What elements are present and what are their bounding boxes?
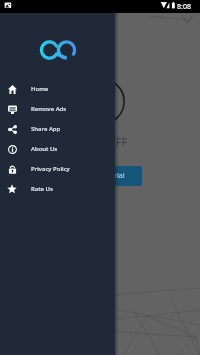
staticText: 8:08 <box>177 2 191 12</box>
staticText: Rate Us <box>31 185 53 193</box>
button[interactable]: Rate Us <box>0 179 115 199</box>
staticText: Remove Ads <box>31 105 67 113</box>
staticText: Share App <box>31 125 61 133</box>
button[interactable]: Home <box>0 79 115 99</box>
staticText: Privacy Policy <box>31 165 70 173</box>
staticText: Home <box>31 85 49 93</box>
button[interactable]: Start Free Trial <box>58 166 142 186</box>
button[interactable]: About Us <box>0 139 115 159</box>
staticText: OFF <box>107 134 128 149</box>
button[interactable]: Share App <box>0 119 115 139</box>
staticText: About Us <box>31 145 58 153</box>
staticText: Start Free Trial <box>76 171 125 181</box>
button[interactable]: Privacy Policy <box>0 159 115 179</box>
button[interactable]: Remove Ads <box>0 99 115 119</box>
